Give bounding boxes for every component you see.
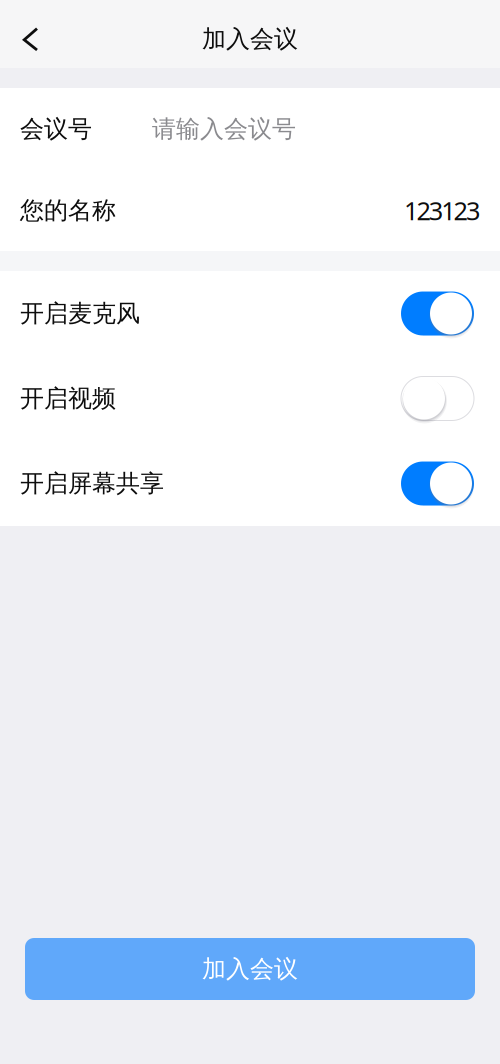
button[interactable]: 加入会议 xyxy=(25,938,475,1000)
staticText: 123123 xyxy=(404,194,480,227)
button[interactable]: 返回 xyxy=(0,1,58,67)
staticText: 请输入会议号 xyxy=(152,114,296,144)
button[interactable]: 您的名称 xyxy=(0,170,500,251)
staticText: 您的名称 xyxy=(20,196,116,225)
staticText: 开启麦克风 xyxy=(20,299,140,328)
button[interactable]: 开启屏幕共享 xyxy=(0,441,500,526)
button[interactable]: 开启麦克风 xyxy=(0,271,500,356)
staticText: 开启屏幕共享 xyxy=(20,469,164,498)
staticText: 加入会议 xyxy=(202,954,298,984)
button[interactable]: 开启视频 xyxy=(0,356,500,441)
staticText: 会议号 xyxy=(20,114,92,144)
staticText: 加入会议 xyxy=(202,24,298,54)
button[interactable]: 会议号 xyxy=(0,88,500,170)
staticText: 开启视频 xyxy=(20,384,116,413)
